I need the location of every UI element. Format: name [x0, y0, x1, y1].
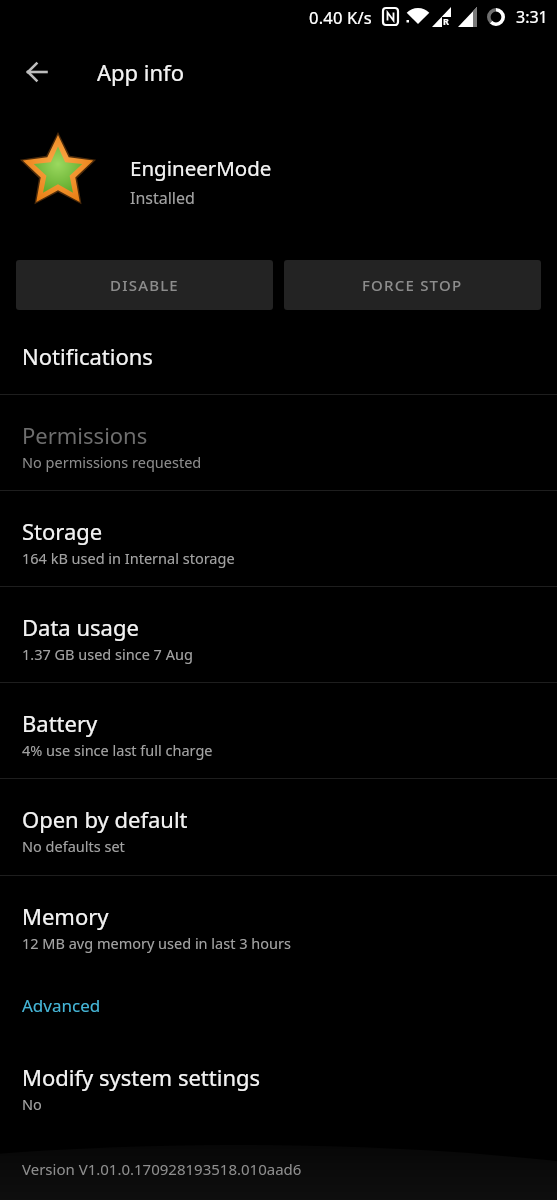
staticText: DISABLE — [110, 275, 179, 295]
staticText: 1.37 GB used since 7 Aug — [22, 644, 193, 664]
staticText: FORCE STOP — [362, 275, 463, 295]
button[interactable]: Memory — [0, 876, 557, 971]
button[interactable]: Permissions — [0, 395, 557, 490]
staticText: 12 MB avg memory used in last 3 hours — [22, 933, 291, 953]
button[interactable]: DISABLE — [16, 260, 273, 310]
staticText: 0.40 K/s — [309, 6, 372, 28]
staticText: 4% use since last full charge — [22, 740, 213, 760]
button[interactable]: Battery — [0, 683, 557, 778]
staticText: R — [443, 15, 449, 27]
staticText: Permissions — [22, 420, 148, 450]
staticText: Version V1.01.0.170928193518.010aad6 — [22, 1159, 302, 1179]
staticText: No permissions requested — [22, 452, 202, 472]
staticText: Data usage — [22, 612, 139, 642]
staticText: Memory — [22, 901, 109, 931]
staticText: No — [22, 1094, 42, 1114]
staticText: Battery — [22, 708, 98, 738]
button[interactable]: Storage — [0, 491, 557, 586]
staticText: Notifications — [22, 341, 153, 371]
staticText: App info — [97, 57, 184, 87]
staticText: Storage — [22, 516, 103, 546]
staticText: Modify system settings — [22, 1062, 261, 1092]
staticText: Installed — [130, 187, 195, 209]
staticText: 3:31 — [516, 6, 548, 28]
staticText: No defaults set — [22, 836, 125, 856]
staticText: EngineerMode — [130, 154, 272, 182]
button[interactable]: Advanced — [0, 971, 557, 1040]
staticText: Open by default — [22, 804, 188, 834]
button[interactable] — [25, 60, 49, 84]
button[interactable]: Modify system settings — [0, 1040, 557, 1137]
button[interactable]: Open by default — [0, 779, 557, 875]
button[interactable]: Data usage — [0, 587, 557, 682]
staticText: 164 kB used in Internal storage — [22, 548, 235, 568]
button[interactable]: Notifications — [0, 310, 557, 394]
button[interactable]: FORCE STOP — [284, 260, 541, 310]
staticText: Advanced — [22, 994, 101, 1017]
